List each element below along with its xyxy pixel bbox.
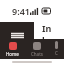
button[interactable]: Menu [3,32,31,39]
staticText: 9:41 [12,5,30,17]
staticText: Calls [55,50,58,57]
button[interactable]: Calls [49,39,64,59]
staticText: Home [6,51,19,57]
button[interactable]: Home [0,40,25,59]
button[interactable]: Chats [25,40,49,59]
staticText: Chats [31,51,43,57]
staticText: Inbox [42,22,56,39]
